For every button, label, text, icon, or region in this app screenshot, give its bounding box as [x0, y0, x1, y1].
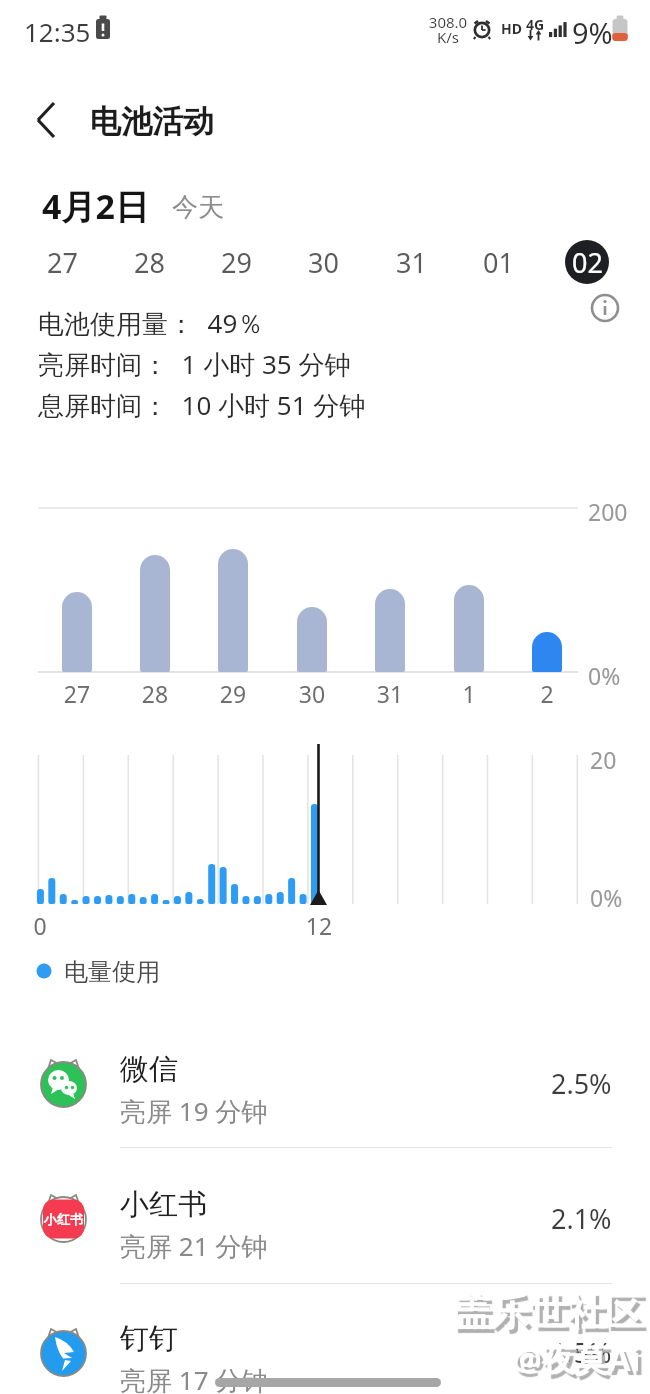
staticText: 电池使用量： 49％ — [38, 305, 264, 341]
button[interactable] — [24, 96, 72, 144]
staticText: 29 — [208, 678, 258, 709]
staticText: 29 — [221, 244, 252, 281]
staticText: 小红书 — [120, 1186, 207, 1223]
staticText: 01 — [483, 244, 514, 281]
button[interactable]: 27 — [40, 240, 84, 284]
staticText: 9% — [572, 13, 613, 52]
staticText: 1.5% — [551, 1334, 612, 1371]
staticText: 2.5% — [551, 1065, 612, 1102]
button[interactable]: 钉钉 — [0, 1298, 650, 1394]
staticText: 0 — [28, 910, 52, 941]
button[interactable]: 30 — [301, 240, 345, 284]
staticText: 28 — [134, 244, 165, 281]
staticText: 今天 — [172, 191, 224, 224]
staticText: 电池活动 — [90, 102, 214, 141]
staticText: 0% — [588, 660, 621, 691]
staticText: @夜莫Ai — [512, 1336, 641, 1381]
staticText: 2 — [522, 678, 572, 709]
button[interactable]: 02 — [565, 240, 609, 284]
button[interactable]: 微信 — [0, 1029, 650, 1137]
staticText: 亮屏时间： 1 小时 35 分钟 — [38, 346, 351, 382]
staticText: 2.1% — [551, 1200, 612, 1237]
staticText: 1 — [444, 678, 494, 709]
button[interactable]: 01 — [476, 240, 520, 284]
staticText: 28 — [130, 678, 180, 709]
staticText: 31 — [365, 678, 415, 709]
staticText: 31 — [396, 244, 427, 281]
staticText: HD — [501, 19, 522, 38]
staticText: 27 — [52, 678, 102, 709]
button[interactable] — [587, 290, 623, 326]
button[interactable]: 29 — [214, 240, 258, 284]
staticText: 30 — [287, 678, 337, 709]
staticText: 0% — [590, 882, 623, 913]
staticText: 27 — [47, 244, 78, 281]
staticText: 4月2日 — [42, 183, 149, 229]
staticText: 308.0 — [426, 12, 470, 32]
staticText: 小红书 — [44, 1211, 83, 1227]
staticText: 亮屏 19 分钟 — [120, 1093, 268, 1129]
staticText: 12 — [305, 910, 333, 941]
button[interactable]: 小红书 — [0, 1164, 650, 1272]
staticText: 亮屏 21 分钟 — [120, 1228, 268, 1264]
staticText: 钉钉 — [120, 1320, 178, 1357]
staticText: K/s — [426, 27, 470, 47]
staticText: 02 — [572, 244, 603, 281]
staticText: 12:35 — [24, 14, 91, 49]
staticText: 电量使用 — [64, 957, 160, 987]
staticText: 30 — [308, 244, 339, 281]
button[interactable]: 31 — [389, 240, 433, 284]
staticText: 盖乐世社区 — [453, 1288, 643, 1336]
staticText: 200 — [588, 496, 628, 527]
staticText: 4G — [526, 15, 545, 34]
staticText: 息屏时间： 10 小时 51 分钟 — [38, 387, 366, 423]
button[interactable]: 28 — [127, 240, 171, 284]
staticText: 微信 — [120, 1051, 178, 1088]
staticText: 20 — [590, 744, 617, 775]
staticText: 亮屏 17 分钟 — [120, 1362, 268, 1394]
